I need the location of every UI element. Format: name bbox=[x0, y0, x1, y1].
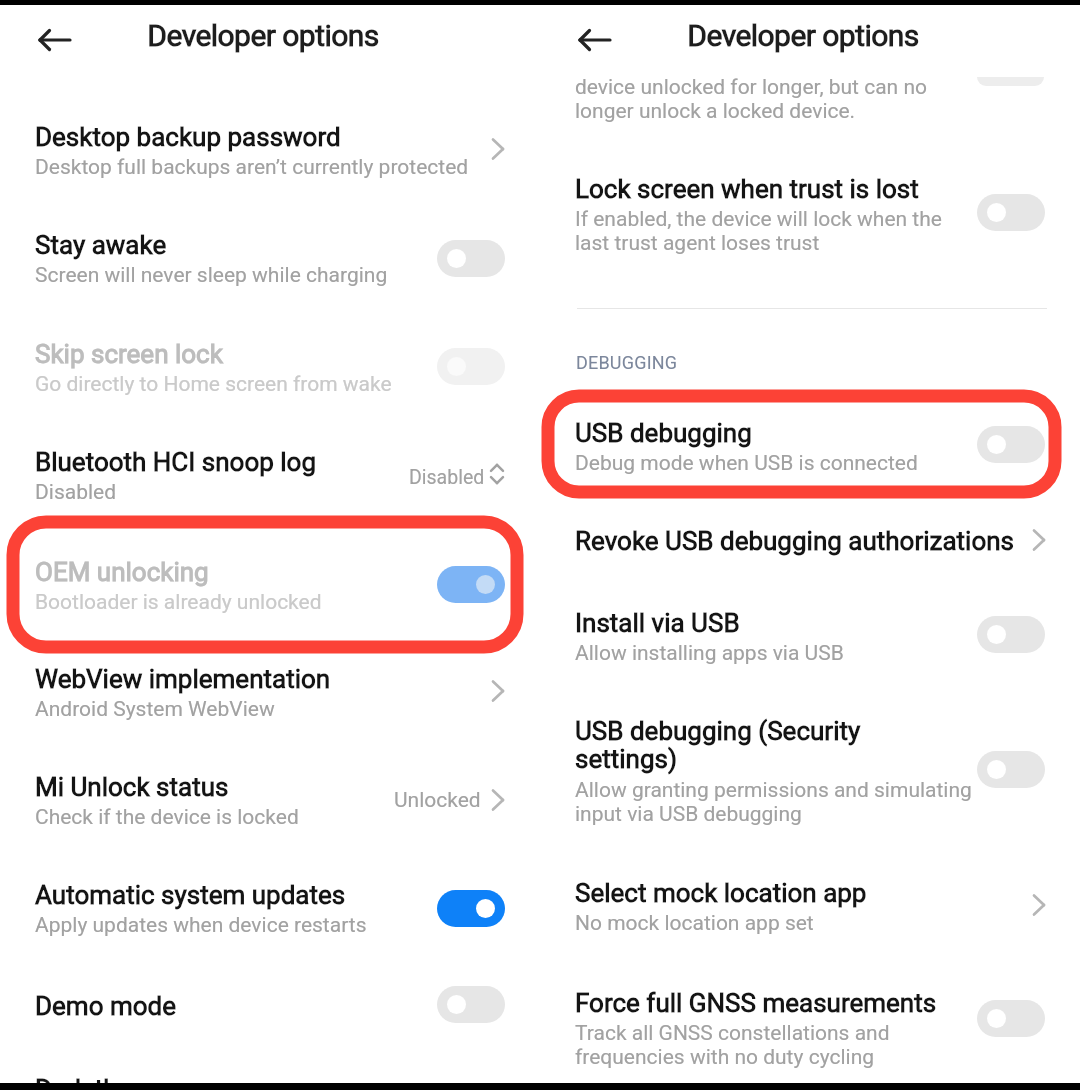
staticText: Go directly to Home screen from wake bbox=[35, 372, 392, 397]
button[interactable]: Disabled bbox=[395, 450, 517, 496]
staticText: Demo mode bbox=[35, 991, 177, 1021]
staticText: USB debugging bbox=[575, 418, 752, 448]
button[interactable]: Automatic system updates bbox=[0, 864, 505, 964]
staticText: Automatic system updates bbox=[35, 880, 346, 910]
staticText: Bootloader is already unlocked bbox=[35, 590, 322, 615]
button[interactable]: USB debugging bbox=[540, 402, 1045, 502]
button[interactable]: Lock screen when trust is lost bbox=[977, 194, 1045, 231]
staticText: Desktop backup password bbox=[35, 122, 341, 152]
button[interactable]: Change value bbox=[480, 457, 514, 491]
staticText: Track all GNSS constellations and freque… bbox=[575, 1021, 890, 1069]
button[interactable]: Lock screen when trust is lost bbox=[540, 158, 1045, 278]
button[interactable]: Skip screen lock bbox=[0, 323, 505, 423]
staticText: Disabled bbox=[35, 480, 117, 505]
staticText: Install via USB bbox=[575, 608, 740, 638]
button[interactable]: Select mock location app bbox=[540, 862, 1045, 962]
button[interactable]: WebView implementation bbox=[0, 648, 505, 748]
button[interactable]: OEM unlocking bbox=[437, 566, 505, 603]
button[interactable]: Open bbox=[481, 783, 515, 817]
button[interactable]: Install via USB bbox=[977, 616, 1045, 653]
staticText: DEBUGGING bbox=[576, 352, 678, 373]
staticText: No mock location app set bbox=[575, 911, 814, 936]
staticText: Allow granting permissions and simulatin… bbox=[575, 778, 972, 826]
staticText: Mi Unlock status bbox=[35, 772, 229, 802]
staticText: Force full GNSS measurements bbox=[575, 988, 937, 1018]
staticText: Skip screen lock bbox=[35, 339, 223, 369]
staticText: Unlocked bbox=[394, 788, 481, 813]
button[interactable]: USB debugging bbox=[977, 426, 1045, 463]
button[interactable]: Desktop backup password bbox=[0, 106, 505, 206]
button[interactable]: Back bbox=[31, 16, 79, 64]
staticText: Desktop full backups aren’t currently pr… bbox=[35, 155, 469, 180]
button[interactable]: Stay awake bbox=[437, 240, 505, 277]
staticText: device unlocked for longer, but can no l… bbox=[575, 75, 927, 123]
button[interactable]: Open bbox=[1022, 888, 1056, 922]
staticText: Lock screen when trust is lost bbox=[575, 174, 919, 204]
button[interactable]: Stay awake bbox=[0, 214, 505, 314]
staticText: Bluetooth HCI snoop log bbox=[35, 447, 317, 477]
staticText: Debug mode when USB is connected bbox=[575, 451, 918, 476]
staticText: If enabled, the device will lock when th… bbox=[575, 207, 942, 255]
button[interactable]: Unlocked bbox=[370, 776, 505, 822]
staticText: USB debugging (Security settings) bbox=[575, 716, 861, 775]
button[interactable]: Open bbox=[481, 674, 515, 708]
button[interactable]: Mi Unlock status bbox=[0, 756, 505, 856]
staticText: OEM unlocking bbox=[35, 557, 209, 587]
button[interactable]: Demo mode bbox=[437, 986, 505, 1023]
button[interactable]: USB debugging (Security settings) bbox=[540, 700, 1045, 850]
button[interactable]: USB debugging security settings bbox=[977, 751, 1045, 788]
button[interactable]: Force full GNSS measurements bbox=[540, 972, 1045, 1062]
staticText: Select mock location app bbox=[575, 878, 867, 908]
button[interactable]: Demo mode bbox=[0, 975, 505, 1035]
staticText: Developer options bbox=[147, 18, 379, 53]
button[interactable]: Open bbox=[1022, 523, 1056, 557]
button[interactable]: Install via USB bbox=[540, 592, 1045, 692]
staticText: WebView implementation bbox=[35, 664, 331, 694]
staticText: Developer options bbox=[687, 18, 919, 53]
staticText: Android System WebView bbox=[35, 697, 275, 722]
staticText: Screen will never sleep while charging bbox=[35, 263, 388, 288]
staticText: Stay awake bbox=[35, 230, 167, 260]
button[interactable]: Back bbox=[571, 16, 619, 64]
button[interactable]: Revoke USB debugging authorizations bbox=[540, 510, 1045, 570]
button[interactable]: Bluetooth HCI snoop log bbox=[0, 431, 505, 531]
button[interactable]: Force full GNSS measurements bbox=[977, 1000, 1045, 1037]
staticText: Allow installing apps via USB bbox=[575, 641, 844, 666]
staticText: Revoke USB debugging authorizations bbox=[575, 526, 1015, 556]
button[interactable]: Skip screen lock bbox=[437, 348, 505, 385]
staticText: Dark theme bbox=[35, 1074, 168, 1090]
button[interactable]: Automatic system updates bbox=[437, 890, 505, 927]
staticText: Apply updates when device restarts bbox=[35, 913, 367, 938]
staticText: Check if the device is locked bbox=[35, 805, 299, 830]
staticText: Disabled bbox=[409, 466, 485, 489]
button[interactable]: Open bbox=[481, 132, 515, 166]
button[interactable]: OEM unlocking bbox=[0, 541, 505, 641]
